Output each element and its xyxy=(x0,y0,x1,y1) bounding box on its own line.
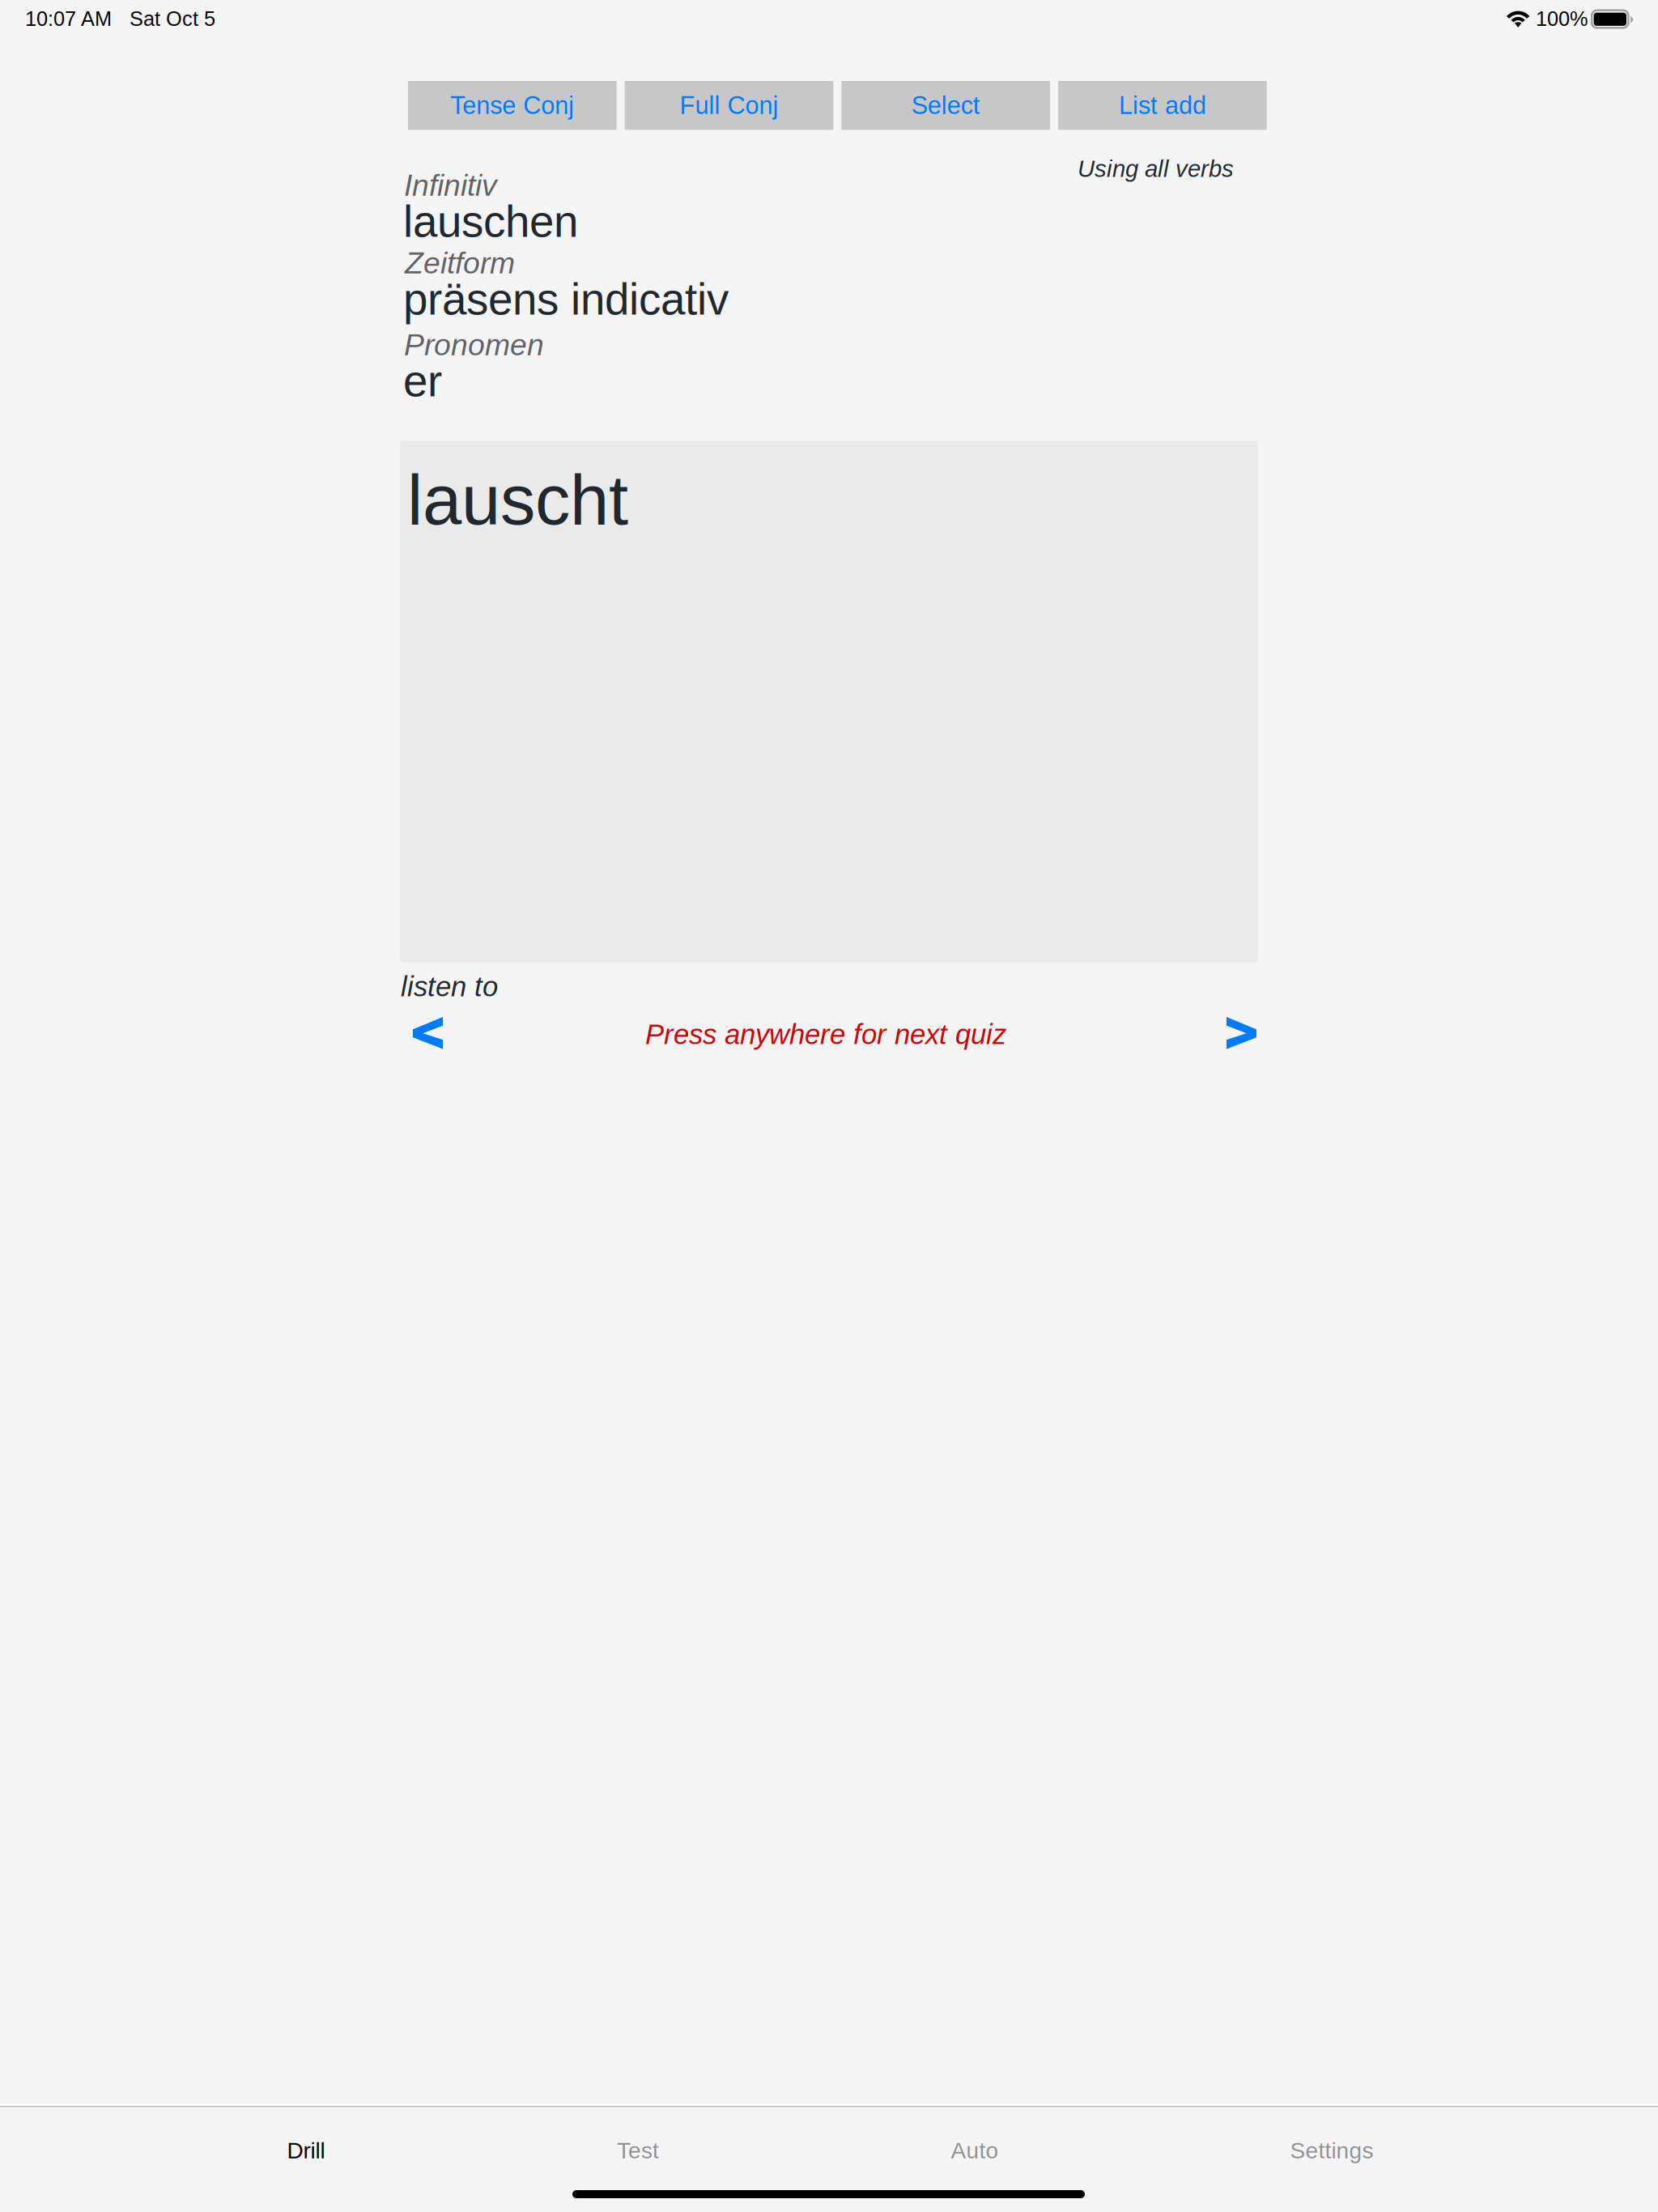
staticText: Sat Oct 5 xyxy=(130,7,215,30)
staticText: Select xyxy=(911,91,980,119)
staticText: lauschen xyxy=(403,197,578,246)
staticText: Tense Conj xyxy=(450,91,574,119)
button[interactable]: Test xyxy=(557,2110,719,2191)
staticText: Auto xyxy=(951,2138,999,2163)
button[interactable]: Settings xyxy=(1251,2110,1413,2191)
staticText: Zeitform xyxy=(405,246,515,280)
staticText: 100% xyxy=(1536,7,1588,30)
staticText: 10:07 AM xyxy=(25,7,112,30)
button[interactable]: Tense Conj xyxy=(408,81,617,130)
staticText: List add xyxy=(1119,91,1206,119)
button[interactable]: Drill xyxy=(225,2110,387,2191)
staticText: Settings xyxy=(1290,2138,1373,2163)
staticText: Test xyxy=(617,2138,659,2163)
staticText: Press anywhere for next quiz xyxy=(645,1019,1006,1050)
button[interactable]: Select xyxy=(841,81,1050,130)
button[interactable]: Full Conj xyxy=(625,81,833,130)
staticText: Infinitiv xyxy=(404,168,497,202)
button[interactable]: Previous verb xyxy=(413,1017,443,1049)
staticText: präsens indicativ xyxy=(403,274,729,324)
button[interactable]: List add xyxy=(1058,81,1267,130)
staticText: lauscht xyxy=(407,461,628,539)
button[interactable]: Auto xyxy=(894,2110,1056,2191)
staticText: Pronomen xyxy=(404,328,544,362)
staticText: Full Conj xyxy=(680,91,778,119)
staticText: er xyxy=(403,356,442,406)
staticText: listen to xyxy=(401,971,498,1002)
staticText: Using all verbs xyxy=(1078,155,1234,182)
button[interactable]: Next verb xyxy=(1226,1017,1256,1049)
staticText: Drill xyxy=(287,2138,325,2163)
